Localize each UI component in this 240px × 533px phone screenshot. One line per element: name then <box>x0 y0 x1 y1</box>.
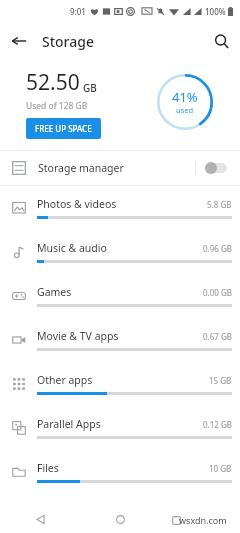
staticText: FREE UP SPACE <box>35 123 92 134</box>
staticText: Files <box>37 461 59 475</box>
staticText: Photos & videos <box>37 197 117 211</box>
staticText: 0.00 GB <box>203 287 232 298</box>
button[interactable]: Games <box>0 274 240 318</box>
staticText: GB <box>83 81 97 95</box>
button[interactable]: Files <box>0 450 240 494</box>
staticText: 41% <box>172 88 198 106</box>
button[interactable]: Recents <box>160 506 240 533</box>
staticText: Storage <box>42 32 94 51</box>
staticText: 9:01 <box>70 6 86 17</box>
staticText: 52.50 <box>26 68 80 97</box>
staticText: Music & audio <box>37 241 107 255</box>
staticText: 10 GB <box>209 463 232 474</box>
staticText: wsxdn.com <box>179 514 227 526</box>
button[interactable]: Search <box>202 22 240 60</box>
button[interactable]: Back <box>0 22 38 60</box>
button[interactable]: Back <box>0 506 80 533</box>
staticText: Games <box>37 285 72 299</box>
staticText: 0.96 GB <box>203 243 232 254</box>
staticText: Movie & TV apps <box>37 329 119 343</box>
button[interactable]: Parallel Apps <box>0 406 240 450</box>
staticText: Parallel Apps <box>37 417 101 431</box>
button[interactable]: FREE UP SPACE <box>26 118 101 139</box>
staticText: Used of 128 GB <box>26 100 88 112</box>
button[interactable]: Photos & videos <box>0 186 240 230</box>
staticText: Other apps <box>37 373 93 387</box>
button[interactable]: Home <box>80 506 160 533</box>
staticText: used <box>176 105 194 115</box>
button[interactable]: Storage manager <box>0 151 240 185</box>
staticText: 15 GB <box>209 375 232 386</box>
button[interactable]: Storage manager toggle <box>196 151 236 185</box>
staticText: Storage manager <box>38 161 124 175</box>
staticText: 5.8 GB <box>207 199 232 210</box>
button[interactable]: Other apps <box>0 362 240 406</box>
staticText: 0.67 GB <box>203 331 232 342</box>
button[interactable]: Music & audio <box>0 230 240 274</box>
button[interactable]: Movie & TV apps <box>0 318 240 362</box>
staticText: 100% <box>205 6 226 17</box>
staticText: 0.12 GB <box>203 419 232 430</box>
